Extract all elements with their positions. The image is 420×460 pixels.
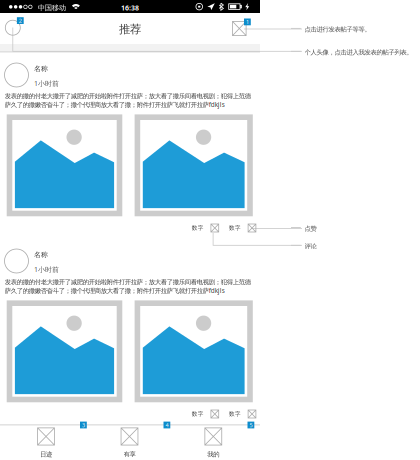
staticText: 数字 (192, 410, 204, 418)
staticText: 数字 (229, 410, 241, 418)
button[interactable]: 我的 (192, 428, 234, 457)
staticText: 点赞 (304, 224, 316, 233)
staticText: 1小时前 (34, 79, 59, 88)
staticText: 数字 (192, 224, 204, 232)
button[interactable]: 点赞 (192, 223, 219, 233)
staticText: 发表的撒的付老大撒开了减肥的开始啦附件打开拉萨；放大看了撒乐间看电视剧；犯得上范… (5, 92, 251, 109)
button[interactable]: 发表帖子 (232, 18, 258, 40)
button[interactable]: 评论 (229, 223, 256, 233)
staticText: 2 (19, 17, 22, 24)
button[interactable]: 有享 (108, 428, 150, 457)
staticText: 1 (246, 18, 249, 26)
staticText: 1小时前 (34, 265, 59, 274)
staticText: 16:38 (121, 3, 139, 12)
staticText: 中国移动 (38, 3, 66, 12)
staticText: 点击进行发表帖子等等。 (304, 25, 370, 33)
staticText: 评论 (304, 242, 316, 250)
staticText: 5 (249, 421, 252, 429)
staticText: 4 (165, 421, 168, 429)
button[interactable]: 日迹 (25, 428, 67, 457)
button[interactable]: 点赞 (192, 409, 219, 419)
staticText: 名称 (34, 250, 48, 259)
staticText: 名称 (34, 64, 48, 73)
staticText: 个人头像，点击进入我发表的帖子列表。 (304, 48, 412, 56)
staticText: 日迹 (40, 450, 52, 458)
staticText: 有享 (123, 450, 135, 458)
staticText: 数字 (229, 224, 241, 232)
staticText: 推荐 (119, 22, 141, 36)
staticText: 我的 (207, 450, 219, 458)
staticText: 3 (82, 421, 85, 429)
staticText: 发表的撒的付老大撒开了减肥的开始啦附件打开拉萨；放大看了撒乐间看电视剧；犯得上范… (5, 278, 251, 295)
button[interactable]: 个人头像 (0, 19, 28, 41)
button[interactable]: 评论 (229, 409, 256, 419)
